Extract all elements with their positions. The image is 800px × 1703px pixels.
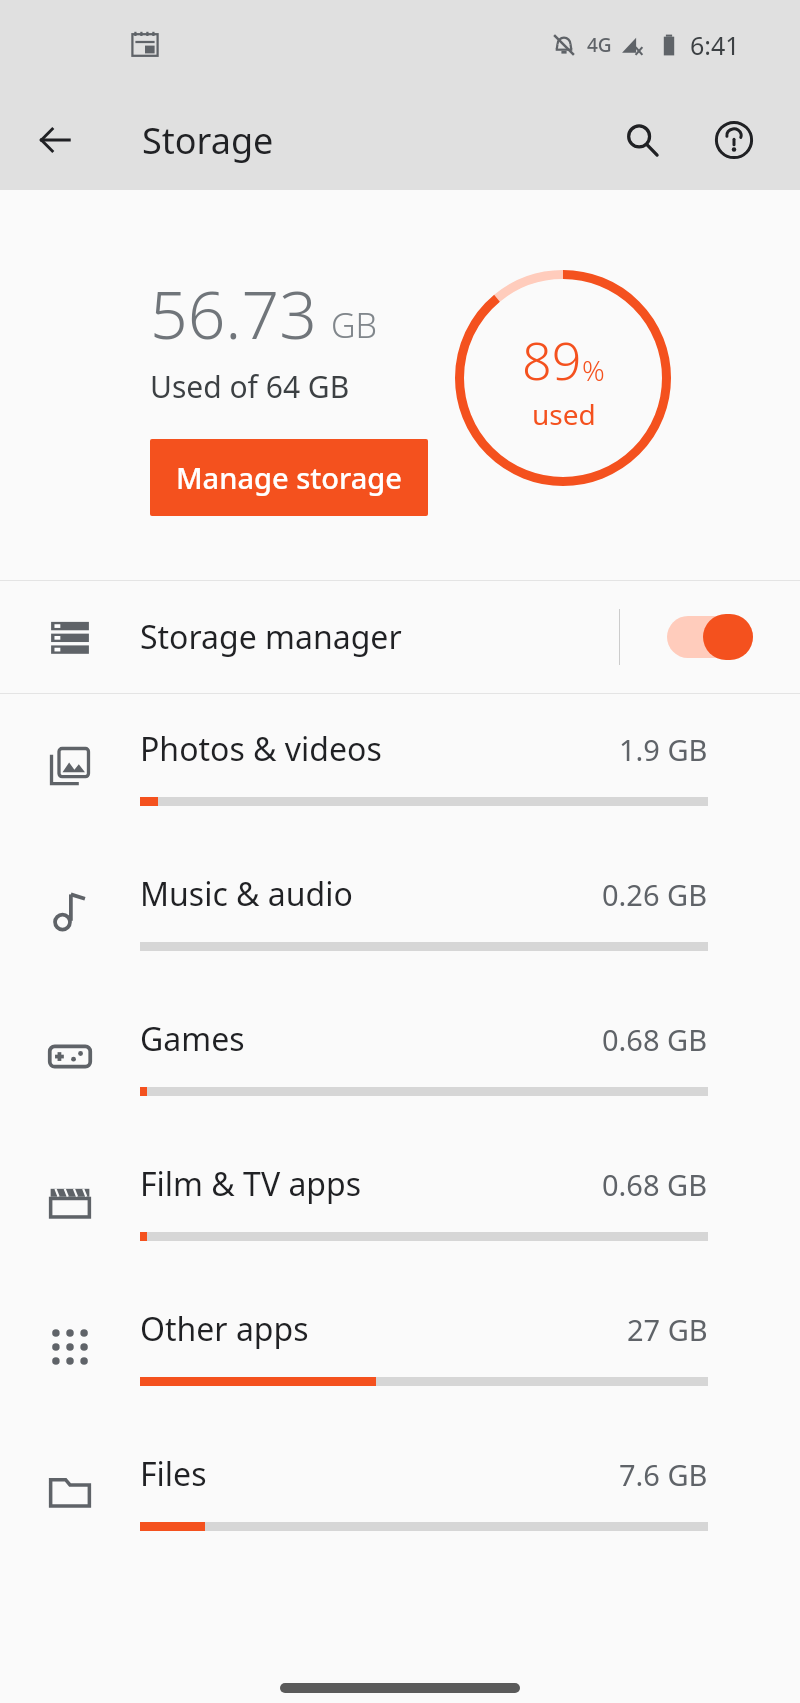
staticText: 27 GB	[627, 1310, 708, 1349]
button[interactable]: Help	[702, 108, 766, 172]
staticText: Used of 64 GB	[150, 366, 350, 407]
button[interactable]: Storage manager toggle	[620, 581, 800, 693]
staticText: 0.26 GB	[602, 875, 708, 914]
staticText: 0.68 GB	[602, 1165, 708, 1204]
button[interactable]: Other apps	[0, 1274, 800, 1419]
button[interactable]: Music & audio	[0, 839, 800, 984]
staticText: 89	[522, 324, 582, 395]
staticText: 7.6 GB	[619, 1455, 708, 1494]
staticText: Storage	[142, 116, 274, 165]
staticText: Photos & videos	[140, 727, 382, 771]
staticText: Manage storage	[176, 458, 402, 497]
staticText: 0.68 GB	[602, 1020, 708, 1059]
staticText: Film & TV apps	[140, 1162, 362, 1206]
staticText: 4G	[587, 32, 612, 58]
staticText: %	[582, 351, 605, 389]
button[interactable]: Files	[0, 1419, 800, 1564]
staticText: 56.73	[150, 268, 317, 358]
button[interactable]: Search	[610, 108, 674, 172]
staticText: Storage manager	[140, 615, 619, 659]
staticText: GB	[331, 302, 378, 348]
staticText: 6:41	[690, 28, 740, 62]
staticText: Files	[140, 1452, 207, 1496]
staticText: Other apps	[140, 1307, 309, 1351]
button[interactable]: Photos & videos	[0, 694, 800, 839]
button[interactable]: Film & TV apps	[0, 1129, 800, 1274]
button[interactable]: Back	[24, 109, 86, 171]
button[interactable]: Manage storage	[150, 439, 428, 516]
staticText: Games	[140, 1017, 245, 1061]
button[interactable]: Storage manager	[0, 581, 800, 693]
staticText: used	[532, 395, 596, 433]
staticText: 1.9 GB	[619, 730, 708, 769]
button[interactable]: Games	[0, 984, 800, 1129]
staticText: Music & audio	[140, 872, 353, 916]
